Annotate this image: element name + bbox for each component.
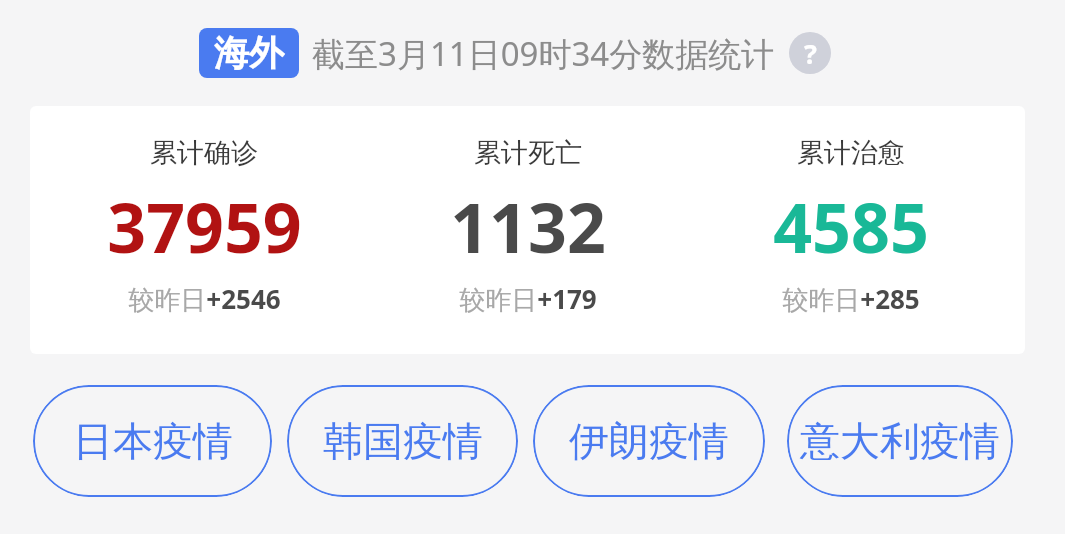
staticText: 伊朗疫情 <box>569 416 729 466</box>
staticText: 较昨日+2546 <box>128 281 281 317</box>
staticText: ? <box>804 35 817 72</box>
button[interactable]: 海外 <box>199 28 299 78</box>
button[interactable]: 意大利疫情 <box>787 385 1013 497</box>
button[interactable]: 韩国疫情 <box>287 385 518 497</box>
staticText: 1132 <box>450 180 606 273</box>
staticText: 较昨日+285 <box>782 281 920 317</box>
button[interactable]: 日本疫情 <box>33 385 272 497</box>
staticText: 日本疫情 <box>73 416 233 466</box>
staticText: 累计确诊 <box>150 136 258 170</box>
button[interactable]: 伊朗疫情 <box>533 385 765 497</box>
staticText: 海外 <box>214 31 284 75</box>
staticText: 韩国疫情 <box>323 416 483 466</box>
staticText: 意大利疫情 <box>800 416 1000 466</box>
staticText: 4585 <box>773 180 929 273</box>
staticText: 较昨日+179 <box>459 281 597 317</box>
button[interactable]: Help <box>789 32 831 74</box>
staticText: 37959 <box>107 180 302 273</box>
staticText: 累计死亡 <box>474 136 582 170</box>
staticText: 截至3月11日09时34分数据统计 <box>312 31 775 76</box>
staticText: 累计治愈 <box>797 136 905 170</box>
button[interactable]: 累计确诊 <box>30 106 1025 354</box>
